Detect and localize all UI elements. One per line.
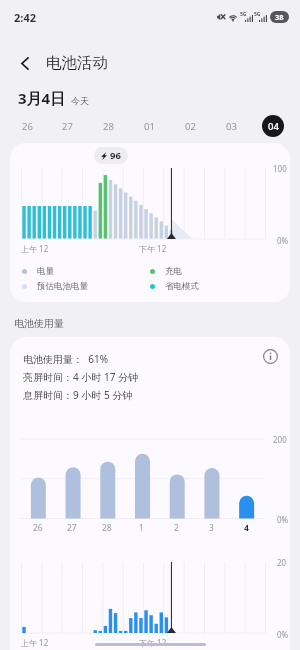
staticText: 28	[102, 522, 112, 534]
staticText: 今天	[71, 95, 89, 106]
staticText: 5G	[240, 11, 247, 18]
staticText: 2	[174, 522, 179, 534]
staticText: 03	[226, 120, 237, 133]
staticText: 26	[33, 522, 43, 534]
staticText: 下午 12	[139, 243, 167, 254]
staticText: 2:42	[14, 10, 36, 25]
staticText: 电量	[37, 266, 54, 277]
button[interactable]: 01	[129, 112, 170, 140]
staticText: 充电	[165, 266, 182, 277]
staticText: 电池使用量： 61%	[23, 352, 108, 366]
staticText: 04	[268, 120, 279, 133]
button[interactable]: 27	[47, 112, 88, 140]
staticText: 0%	[277, 629, 289, 640]
staticText: 0%	[277, 514, 289, 525]
staticText: 02	[185, 120, 196, 133]
staticText: 上午 12	[21, 243, 49, 254]
button[interactable]: 04	[252, 112, 293, 140]
staticText: 96	[110, 149, 121, 162]
button[interactable]: 03	[211, 112, 252, 140]
staticText: 4	[244, 522, 249, 534]
staticText: 3	[209, 522, 214, 534]
button[interactable]: 28	[88, 112, 129, 140]
staticText: 上午 12	[21, 637, 49, 648]
staticText: 27	[67, 522, 77, 534]
staticText: 200	[273, 434, 287, 445]
staticText: 01	[144, 120, 155, 133]
button[interactable]: 02	[170, 112, 211, 140]
staticText: 电池使用量	[14, 317, 64, 330]
staticText: 电池活动	[46, 53, 108, 73]
staticText: 20	[277, 557, 287, 568]
button[interactable]: Info	[257, 343, 283, 369]
staticText: 省电模式	[165, 281, 199, 292]
staticText: 0%	[277, 235, 289, 246]
staticText: 5G	[254, 11, 261, 18]
staticText: 100	[273, 163, 287, 174]
staticText: 亮屏时间：4 小时 17 分钟	[23, 370, 138, 384]
staticText: 1	[139, 522, 144, 534]
staticText: 28	[103, 120, 114, 133]
staticText: 下午 12	[139, 637, 167, 648]
staticText: 3月4日	[18, 88, 66, 108]
staticText: 38	[275, 12, 284, 22]
staticText: 26	[22, 120, 33, 133]
button[interactable]: Back	[11, 49, 39, 77]
staticText: 预估电池电量	[37, 281, 88, 292]
staticText: 27	[62, 120, 73, 133]
button[interactable]: 26	[7, 112, 47, 140]
staticText: 息屏时间：9 小时 5 分钟	[23, 388, 133, 402]
